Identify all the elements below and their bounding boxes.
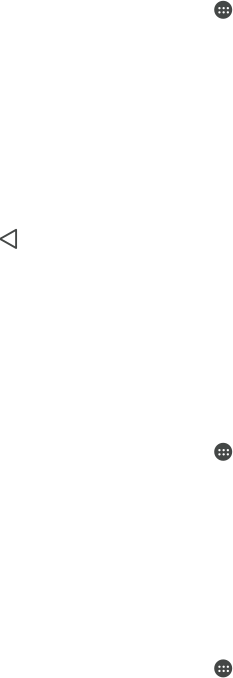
button[interactable]: More options <box>214 1 232 19</box>
button[interactable]: Back <box>0 230 16 248</box>
button[interactable]: More options <box>214 659 232 677</box>
button[interactable]: More options <box>214 443 232 461</box>
